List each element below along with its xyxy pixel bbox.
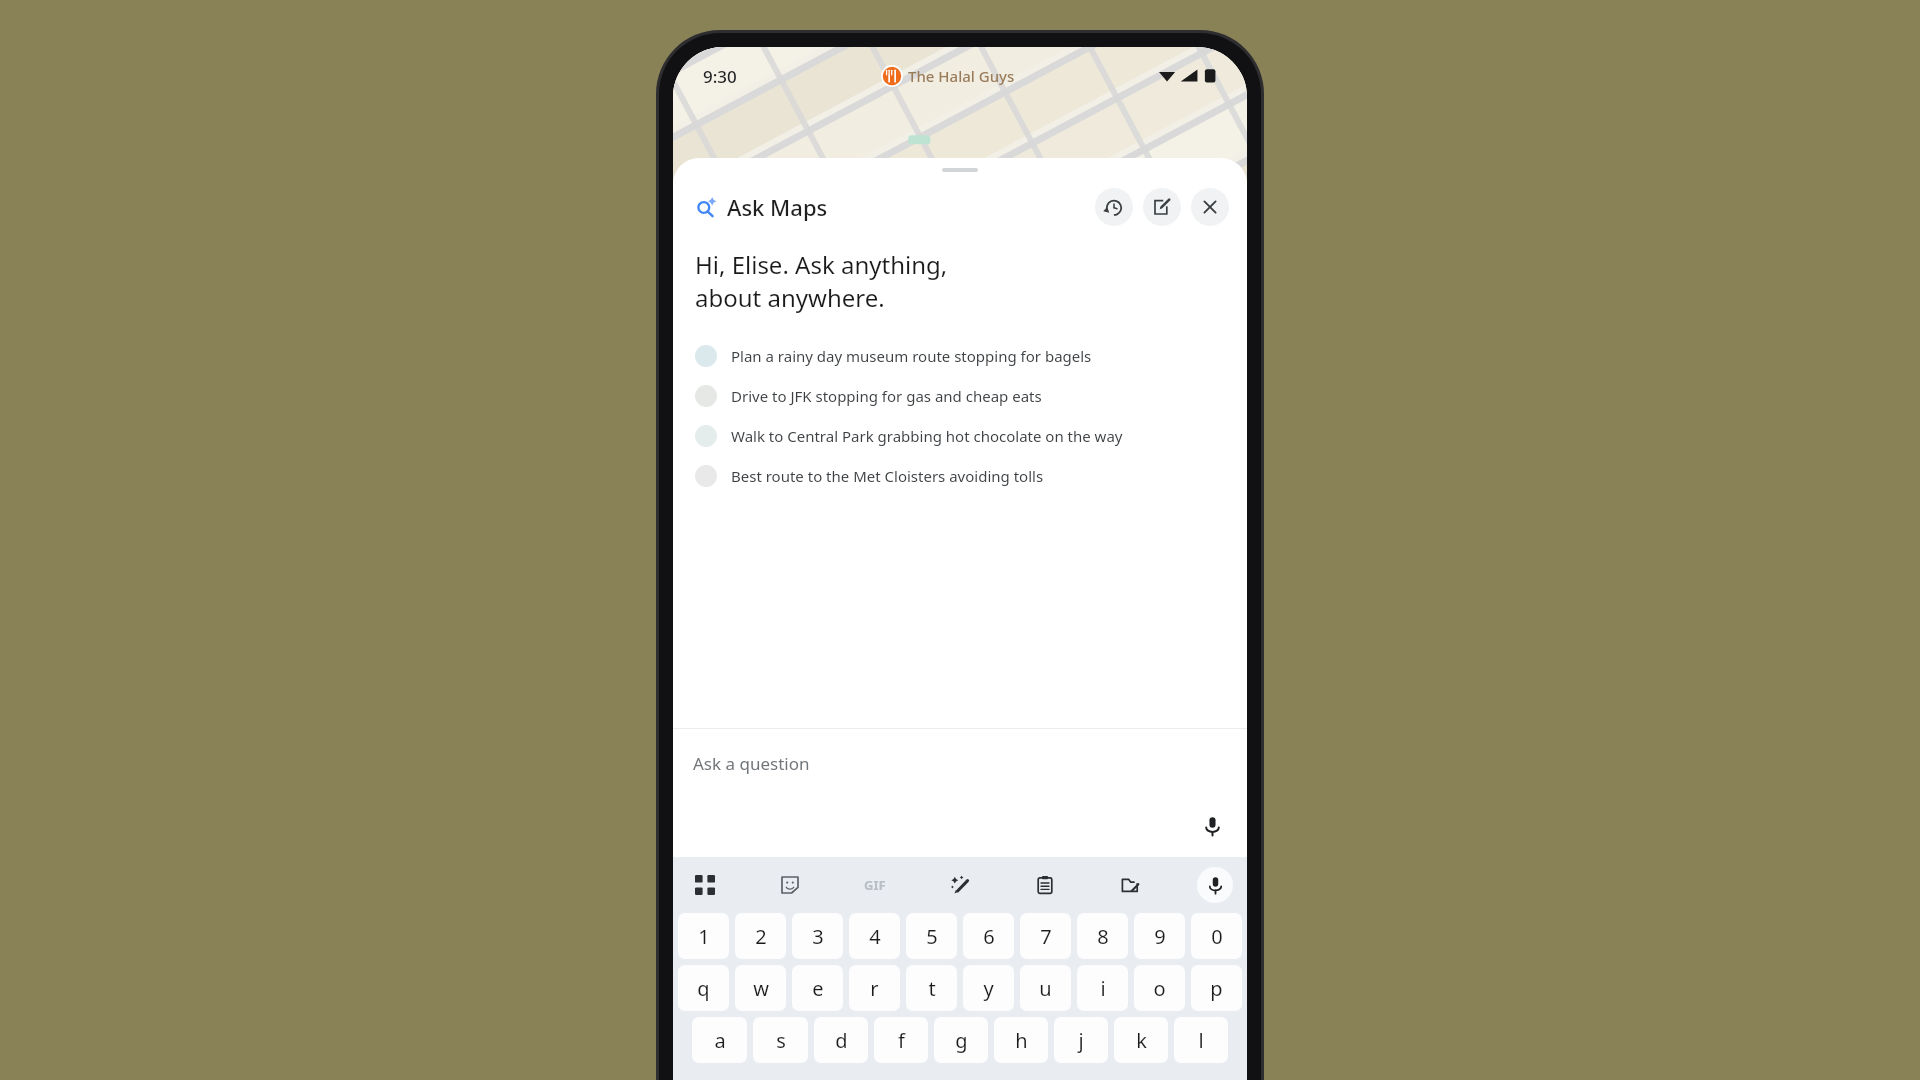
button[interactable]: e xyxy=(792,965,843,1011)
staticText: Drive to JFK stopping for gas and cheap … xyxy=(731,386,1042,406)
staticText: q xyxy=(697,975,710,1002)
staticText: d xyxy=(835,1027,848,1054)
staticText: 1 xyxy=(698,923,710,950)
staticText: 9:30 xyxy=(703,65,737,88)
button[interactable]: Voice input xyxy=(1195,809,1229,843)
staticText: i xyxy=(1100,975,1106,1002)
button[interactable]: Folder xyxy=(1112,867,1148,903)
staticText: 5 xyxy=(926,923,938,950)
staticText: u xyxy=(1039,975,1052,1002)
staticText: 4 xyxy=(869,923,881,950)
button[interactable]: h xyxy=(994,1017,1048,1063)
button[interactable]: Compose xyxy=(1143,188,1181,226)
staticText: j xyxy=(1078,1027,1084,1054)
staticText: 6 xyxy=(983,923,995,950)
button[interactable]: y xyxy=(963,965,1014,1011)
button[interactable]: q xyxy=(678,965,729,1011)
button[interactable]: Clipboard xyxy=(1027,867,1063,903)
staticText: GIF xyxy=(864,876,886,894)
button[interactable]: w xyxy=(735,965,786,1011)
button[interactable]: Best route to the Met Cloisters avoiding… xyxy=(673,456,1247,496)
button[interactable]: Stickers xyxy=(772,867,808,903)
button[interactable]: 7 xyxy=(1020,913,1071,959)
button[interactable]: 9 xyxy=(1134,913,1185,959)
staticText: h xyxy=(1015,1027,1028,1054)
button[interactable]: 0 xyxy=(1191,913,1242,959)
button[interactable]: Magic write xyxy=(942,867,978,903)
staticText: 7 xyxy=(1040,923,1052,950)
staticText: about anywhere. xyxy=(695,281,885,314)
button[interactable]: 6 xyxy=(963,913,1014,959)
staticText: Plan a rainy day museum route stopping f… xyxy=(731,346,1092,366)
button[interactable]: f xyxy=(874,1017,928,1063)
button[interactable]: o xyxy=(1134,965,1185,1011)
button[interactable]: 4 xyxy=(849,913,900,959)
button[interactable]: Close xyxy=(1191,188,1229,226)
staticText: 2 xyxy=(755,923,767,950)
button[interactable]: Apps xyxy=(687,867,723,903)
staticText: g xyxy=(955,1027,968,1054)
staticText: o xyxy=(1153,975,1166,1002)
button[interactable]: 5 xyxy=(906,913,957,959)
button[interactable]: k xyxy=(1114,1017,1168,1063)
button[interactable]: g xyxy=(934,1017,988,1063)
staticText: 8 xyxy=(1097,923,1109,950)
staticText: 3 xyxy=(812,923,824,950)
button[interactable]: a xyxy=(692,1017,747,1063)
staticText: The Halal Guys xyxy=(908,66,1015,86)
staticText: s xyxy=(776,1027,786,1054)
button[interactable]: u xyxy=(1020,965,1071,1011)
staticText: Hi, Elise. Ask anything, xyxy=(695,248,948,281)
button[interactable]: Plan a rainy day museum route stopping f… xyxy=(673,336,1247,376)
button[interactable]: l xyxy=(1174,1017,1228,1063)
button[interactable]: Walk to Central Park grabbing hot chocol… xyxy=(673,416,1247,456)
staticText: p xyxy=(1210,975,1223,1002)
button[interactable]: GIF xyxy=(857,867,893,903)
staticText: Ask Maps xyxy=(727,192,828,222)
button[interactable]: s xyxy=(753,1017,808,1063)
staticText: y xyxy=(983,975,994,1002)
staticText: t xyxy=(928,975,936,1002)
button[interactable]: j xyxy=(1054,1017,1108,1063)
staticText: Ask a question xyxy=(693,752,810,775)
button[interactable]: 2 xyxy=(735,913,786,959)
staticText: f xyxy=(898,1027,905,1054)
button[interactable]: 1 xyxy=(678,913,729,959)
button[interactable]: i xyxy=(1077,965,1128,1011)
button[interactable]: 3 xyxy=(792,913,843,959)
staticText: Walk to Central Park grabbing hot chocol… xyxy=(731,426,1123,446)
button[interactable]: Drive to JFK stopping for gas and cheap … xyxy=(673,376,1247,416)
staticText: l xyxy=(1198,1027,1204,1054)
staticText: 9 xyxy=(1154,923,1166,950)
staticText: w xyxy=(753,975,769,1002)
button[interactable]: 8 xyxy=(1077,913,1128,959)
staticText: Best route to the Met Cloisters avoiding… xyxy=(731,466,1044,486)
button[interactable]: Voice typing xyxy=(1197,867,1233,903)
staticText: k xyxy=(1136,1027,1147,1054)
staticText: 0 xyxy=(1211,923,1223,950)
staticText: e xyxy=(812,975,824,1002)
button[interactable]: p xyxy=(1191,965,1242,1011)
button[interactable]: t xyxy=(906,965,957,1011)
staticText: r xyxy=(870,975,879,1002)
button[interactable]: r xyxy=(849,965,900,1011)
staticText: a xyxy=(714,1027,726,1054)
button[interactable]: d xyxy=(814,1017,868,1063)
button[interactable]: History xyxy=(1095,188,1133,226)
